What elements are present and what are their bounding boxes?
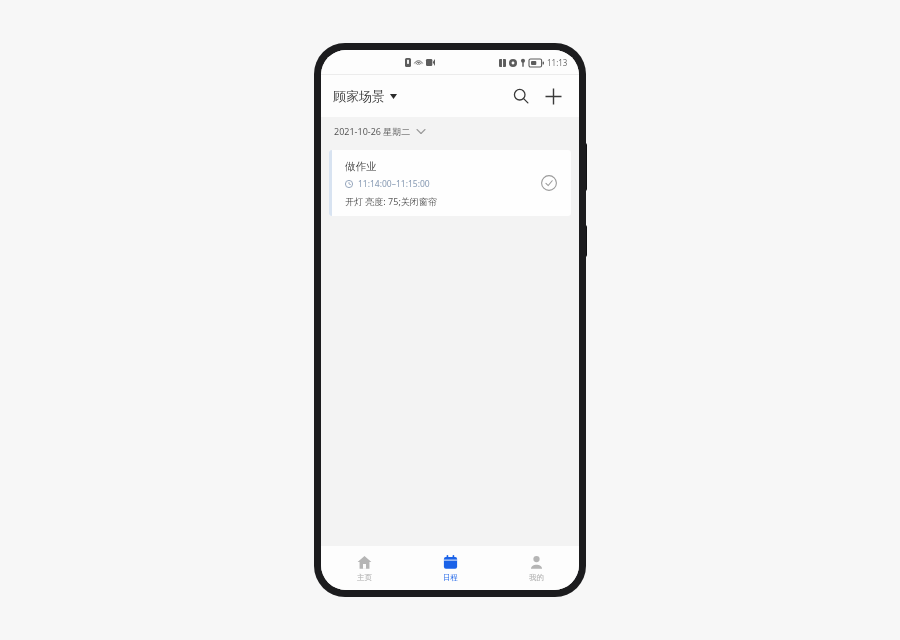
staticText: 开灯 亮度: 75;关闭窗帘 xyxy=(345,195,437,207)
staticText: 日程 xyxy=(443,573,458,582)
button[interactable]: Mark complete xyxy=(536,170,562,196)
staticText: 2021-10-26 星期二 xyxy=(334,125,411,137)
staticText: 做作业 xyxy=(345,160,377,173)
button[interactable]: 做作业 xyxy=(329,150,571,216)
button[interactable]: Search xyxy=(507,82,535,110)
button[interactable]: 日程 xyxy=(407,551,493,586)
staticText: 我的 xyxy=(529,573,544,582)
staticText: 11:14:00–11:15:00 xyxy=(358,178,430,190)
button[interactable]: Add xyxy=(539,82,567,110)
staticText: 11:13 xyxy=(547,57,568,68)
button[interactable]: 2021-10-26 星期二 xyxy=(321,117,579,145)
staticText: 顾家场景 xyxy=(333,88,385,104)
button[interactable]: 顾家场景 xyxy=(333,88,397,104)
button[interactable]: 我的 xyxy=(493,551,579,586)
button[interactable]: 主页 xyxy=(321,551,407,586)
staticText: 主页 xyxy=(357,573,372,582)
